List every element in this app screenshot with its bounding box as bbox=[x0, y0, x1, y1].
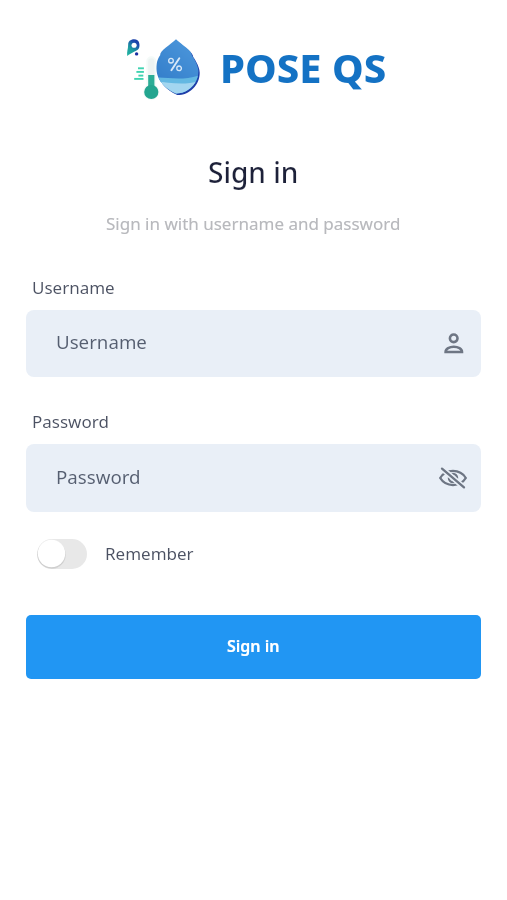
button[interactable]: Remember toggle bbox=[36, 538, 194, 569]
button[interactable]: Username field bbox=[26, 310, 481, 377]
other: Show password bbox=[439, 467, 467, 489]
staticText: Password bbox=[56, 464, 141, 489]
button[interactable]: Sign in bbox=[26, 615, 481, 679]
other: User bbox=[444, 333, 464, 354]
staticText: Sign in bbox=[208, 153, 299, 191]
staticText: Username bbox=[56, 329, 147, 354]
staticText: Remember bbox=[105, 542, 194, 565]
staticText: POSE QS bbox=[220, 40, 387, 94]
button[interactable]: Password field bbox=[26, 444, 481, 512]
staticText: Sign in with username and password bbox=[106, 212, 401, 235]
staticText: Password bbox=[32, 410, 109, 433]
button[interactable]: Remember toggle bbox=[36, 538, 88, 569]
staticText: Username bbox=[32, 276, 115, 299]
staticText: Sign in bbox=[227, 635, 280, 657]
